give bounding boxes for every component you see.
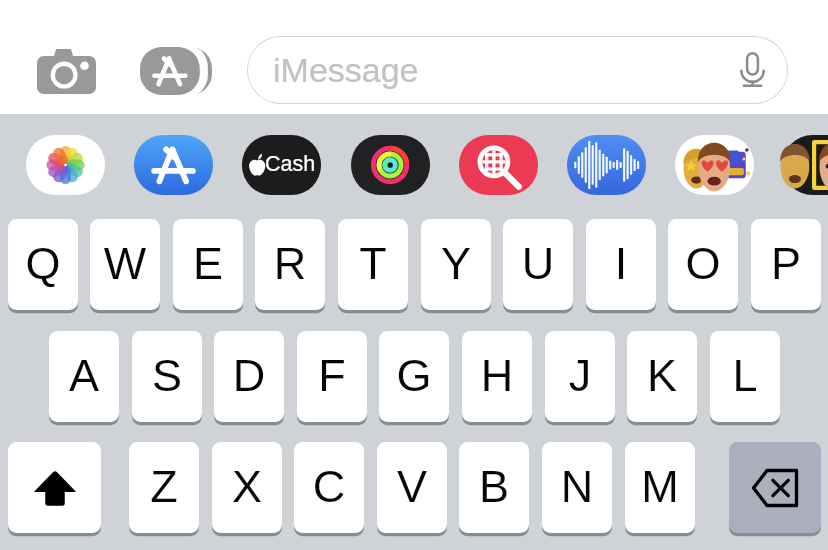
button[interactable]: T [338,219,408,314]
staticText: S [132,350,202,400]
button[interactable]: S [132,331,202,426]
button[interactable]: U [503,219,573,314]
staticText: X [212,461,282,511]
button[interactable]: Backspace [729,442,821,537]
button[interactable]: P [751,219,821,314]
staticText: Q [8,238,78,288]
staticText: iMessage [273,51,419,89]
button[interactable]: X [212,442,282,537]
staticText: B [459,461,529,511]
staticText: N [542,461,612,511]
button[interactable]: Camera [14,22,118,94]
button[interactable]: #images [456,130,540,198]
button[interactable]: Activity [348,130,432,198]
staticText: Y [421,238,491,288]
button[interactable]: Y [421,219,491,314]
staticText: O [668,238,738,288]
button[interactable]: Photos [23,130,107,198]
button[interactable]: C [294,442,364,537]
button[interactable]: App Store [131,130,215,198]
staticText: E [173,238,243,288]
button[interactable]: App store [122,22,218,94]
staticText: T [338,238,408,288]
button[interactable]: Q [8,219,78,314]
staticText: F [297,350,367,400]
button[interactable]: A [49,331,119,426]
staticText: K [627,350,697,400]
button[interactable]: R [255,219,325,314]
staticText: P [751,238,821,288]
staticText: H [462,350,532,400]
staticText: W [90,238,160,288]
button[interactable]: iMessage [247,36,788,104]
button[interactable]: Z [129,442,199,537]
staticText: L [710,350,780,400]
staticText: C [294,461,364,511]
staticText: Z [129,461,199,511]
button[interactable]: G [379,331,449,426]
button[interactable]: Memoji stickers [672,130,756,198]
button[interactable]: I [586,219,656,314]
staticText: J [545,350,615,400]
button[interactable]: J [545,331,615,426]
staticText: R [255,238,325,288]
button[interactable]: K [627,331,697,426]
button[interactable]: F [297,331,367,426]
staticText: V [377,461,447,511]
button[interactable]: D [214,331,284,426]
button[interactable]: B [459,442,529,537]
button[interactable]: L [710,331,780,426]
staticText: I [586,238,656,288]
button[interactable]: H [462,331,532,426]
staticText: M [625,461,695,511]
button[interactable]: V [377,442,447,537]
staticText: G [379,350,449,400]
button[interactable]: Audio [564,130,648,198]
staticText: Cash [265,152,316,176]
button[interactable]: W [90,219,160,314]
button[interactable]: Apple Cash [239,130,323,198]
staticText: A [49,350,119,400]
button[interactable]: N [542,442,612,537]
button[interactable]: Memoji [780,130,828,198]
staticText: U [503,238,573,288]
staticText: D [214,350,284,400]
button[interactable]: O [668,219,738,314]
button[interactable]: E [173,219,243,314]
button[interactable]: Shift [8,442,101,537]
button[interactable]: M [625,442,695,537]
